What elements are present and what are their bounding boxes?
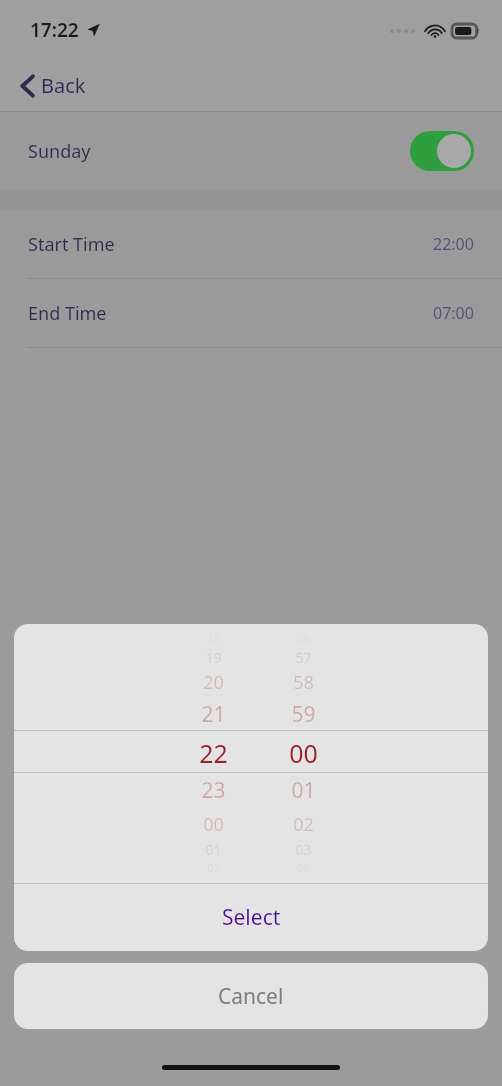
staticText: 02 [293, 812, 314, 837]
staticText: 57 [295, 648, 312, 667]
staticText: 58 [293, 670, 314, 695]
staticText: 19 [205, 648, 222, 667]
staticText: 23 [201, 776, 226, 805]
staticText: Select [222, 903, 281, 932]
staticText: Back [41, 72, 86, 99]
button[interactable]: Back [14, 66, 92, 105]
staticText: 59 [291, 700, 316, 729]
staticText: 00 [203, 812, 224, 837]
staticText: Start Time [28, 232, 433, 257]
staticText: 22 [199, 736, 228, 770]
button[interactable]: Select [14, 884, 488, 951]
button[interactable]: Start Time [0, 210, 502, 278]
button[interactable]: End Time [0, 279, 502, 347]
staticText: 03 [295, 840, 312, 859]
button[interactable]: Cancel [14, 963, 488, 1029]
staticText: End Time [28, 301, 433, 326]
button[interactable]: Sunday enabled toggle [410, 131, 474, 171]
staticText: 01 [205, 840, 222, 859]
staticText: 01 [291, 776, 316, 805]
staticText: 00 [289, 736, 318, 770]
button[interactable]: Sunday [0, 112, 502, 190]
staticText: 07:00 [433, 302, 474, 324]
staticText: 21 [201, 700, 226, 729]
staticText: 20 [203, 670, 224, 695]
staticText: 17:22 [30, 17, 79, 43]
staticText: Cancel [218, 982, 284, 1011]
staticText: 22:00 [433, 233, 474, 255]
staticText: Sunday [28, 139, 410, 164]
